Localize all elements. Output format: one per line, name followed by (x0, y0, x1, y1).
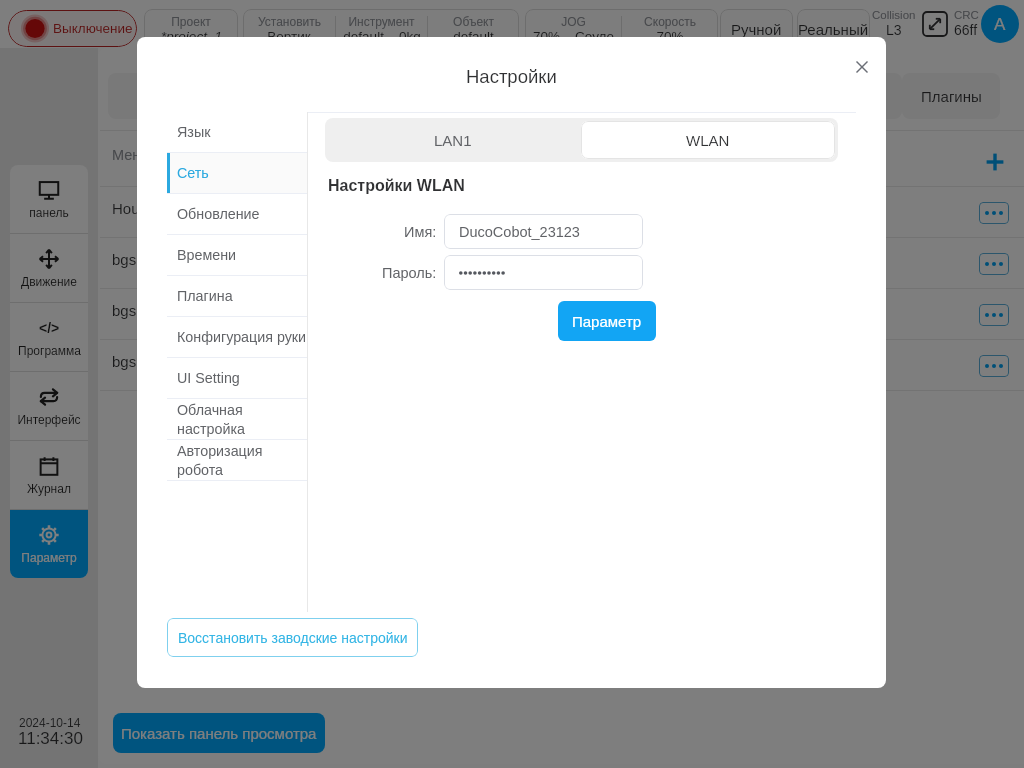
staticText: Параметр (21, 551, 77, 564)
staticText: Обновление (177, 206, 260, 222)
staticText: Мен (112, 147, 141, 163)
staticText: LAN1 (434, 132, 472, 149)
staticText: Авторизация робота (177, 443, 263, 478)
staticText: Плагина (177, 288, 233, 304)
button[interactable]: Показать панель просмотра (113, 713, 325, 753)
button[interactable] (100, 289, 1024, 339)
button[interactable]: Восстановить заводские настройки (167, 618, 418, 657)
button[interactable]: панель (10, 165, 88, 233)
staticText: default (453, 29, 494, 44)
staticText: 66ff (954, 22, 978, 38)
staticText: Журнал (27, 482, 71, 495)
staticText: Настройки (466, 66, 557, 87)
button[interactable]: </> (10, 303, 88, 371)
button[interactable]: Журнал (10, 441, 88, 509)
button[interactable]: Авторизация робота (167, 440, 307, 480)
staticText: JOG (561, 15, 586, 28)
staticText: UI Setting (177, 370, 240, 386)
button[interactable]: More (979, 202, 1009, 224)
staticText: Параметр (572, 313, 642, 330)
staticText: панель (29, 206, 69, 219)
staticText: Ручной (731, 21, 782, 38)
button[interactable]: Интерфейс (10, 372, 88, 440)
staticText: Облачная настройка (177, 402, 245, 437)
staticText: default 0kg (343, 29, 421, 44)
button[interactable]: More (979, 253, 1009, 275)
staticText: Времени (177, 247, 237, 263)
staticText: Имя: (404, 224, 437, 240)
button[interactable] (100, 187, 1024, 237)
staticText: Сеть (177, 165, 209, 181)
staticText: bgs (112, 302, 137, 319)
button[interactable]: UI Setting (167, 358, 307, 398)
staticText: </> (39, 320, 60, 336)
staticText: 2024-10-14 (19, 716, 81, 729)
staticText: 70% (656, 29, 684, 44)
staticText: 70% Соуле (533, 29, 614, 44)
button[interactable]: Параметр (558, 301, 656, 341)
staticText: Программа (18, 344, 81, 357)
staticText: Язык (177, 124, 211, 140)
button[interactable]: Плагины (902, 73, 1000, 119)
button[interactable]: Облачная настройка (167, 399, 307, 439)
button[interactable]: Fullscreen (922, 11, 948, 37)
staticText: Collision (872, 9, 916, 22)
staticText: *project_1 (161, 29, 222, 44)
button[interactable]: Движение (10, 234, 88, 302)
button[interactable]: Сеть (167, 153, 307, 193)
button[interactable]: A (981, 5, 1019, 43)
button[interactable]: LAN1 (325, 118, 581, 162)
staticText: CRC (954, 9, 979, 22)
button[interactable]: Close (847, 52, 876, 81)
button[interactable]: More (979, 355, 1009, 377)
button[interactable]: WLAN (581, 121, 835, 159)
button[interactable]: Tab (108, 73, 172, 119)
staticText: Плагины (921, 88, 982, 105)
button[interactable] (100, 340, 1024, 390)
button[interactable]: Параметр (10, 510, 88, 578)
button[interactable]: Ручной (720, 9, 793, 49)
staticText: Конфигурация руки (177, 329, 307, 345)
staticText: Установить (258, 15, 321, 28)
staticText: Восстановить заводские настройки (178, 630, 408, 646)
staticText: DucoCobot_23123 (459, 224, 580, 240)
staticText: Движение (21, 275, 77, 288)
staticText: Hou (112, 200, 140, 217)
button[interactable]: Времени (167, 235, 307, 275)
button[interactable]: Tab (820, 73, 902, 119)
button[interactable]: More (979, 304, 1009, 326)
staticText: Вертик (267, 29, 311, 44)
staticText: WLAN (686, 132, 730, 149)
button[interactable]: Плагина (167, 276, 307, 316)
button[interactable]: Выключение (8, 10, 137, 47)
staticText: Инструмент (348, 15, 415, 28)
button[interactable]: Обновление (167, 194, 307, 234)
button[interactable]: Проект (144, 9, 238, 49)
staticText: Проект (171, 15, 211, 28)
button[interactable]: Реальный (797, 9, 870, 49)
button[interactable]: Язык (167, 112, 307, 152)
staticText: 11:34:30 (18, 729, 83, 748)
staticText: Настройки WLAN (328, 177, 465, 195)
staticText: bgs (112, 251, 137, 268)
button[interactable]: JOG (525, 9, 718, 49)
staticText: Скорость (644, 15, 696, 28)
staticText: Показать панель просмотра (121, 725, 317, 742)
staticText: Пароль: (382, 265, 437, 281)
staticText: Объект (453, 15, 494, 28)
button[interactable]: Установить (243, 9, 519, 49)
staticText: Выключение (53, 21, 133, 36)
button[interactable]: Add (985, 152, 1005, 172)
staticText: L3 (886, 22, 902, 38)
button[interactable] (100, 238, 1024, 288)
button[interactable]: Конфигурация руки (167, 317, 307, 357)
staticText: Реальный (798, 21, 869, 38)
staticText: bgs (112, 353, 137, 370)
staticText: A (994, 15, 1006, 34)
staticText: Интерфейс (17, 413, 81, 426)
